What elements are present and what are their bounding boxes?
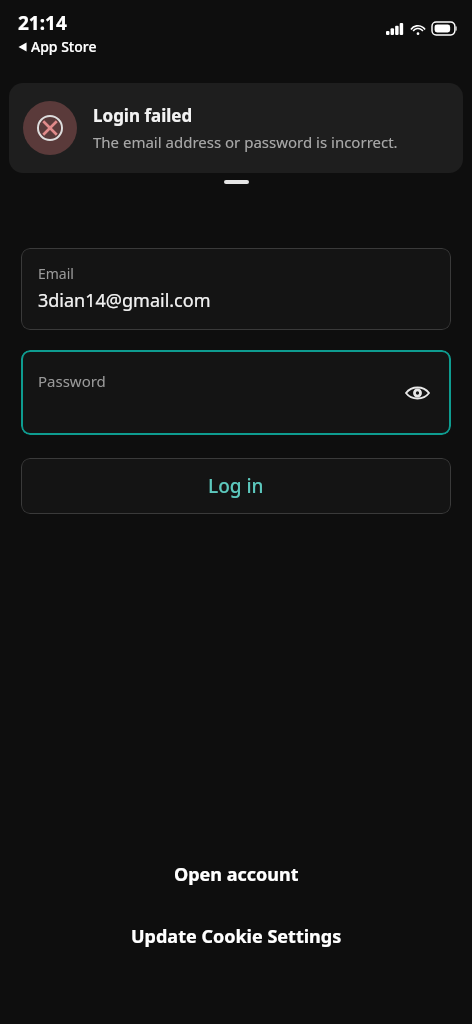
staticText: The email address or password is incorre… [93, 132, 398, 152]
button[interactable]: Login failed [9, 83, 463, 173]
button[interactable]: Update Cookie Settings [0, 912, 472, 960]
button[interactable]: Open account [0, 850, 472, 898]
button[interactable]: Email [21, 248, 451, 330]
button[interactable]: Password [21, 350, 451, 435]
staticText: 3dian14@gmail.com [38, 288, 211, 313]
staticText: App Store [31, 37, 97, 56]
staticText: Update Cookie Settings [131, 924, 342, 949]
staticText: Login failed [93, 104, 193, 127]
staticText: Password [38, 371, 106, 391]
button[interactable]: Log in [21, 458, 451, 514]
staticText: 21:14 [18, 10, 67, 36]
staticText: Open account [174, 862, 299, 887]
staticText: Email [38, 264, 74, 283]
staticText: Log in [208, 473, 264, 499]
button[interactable]: Show password [399, 375, 435, 411]
